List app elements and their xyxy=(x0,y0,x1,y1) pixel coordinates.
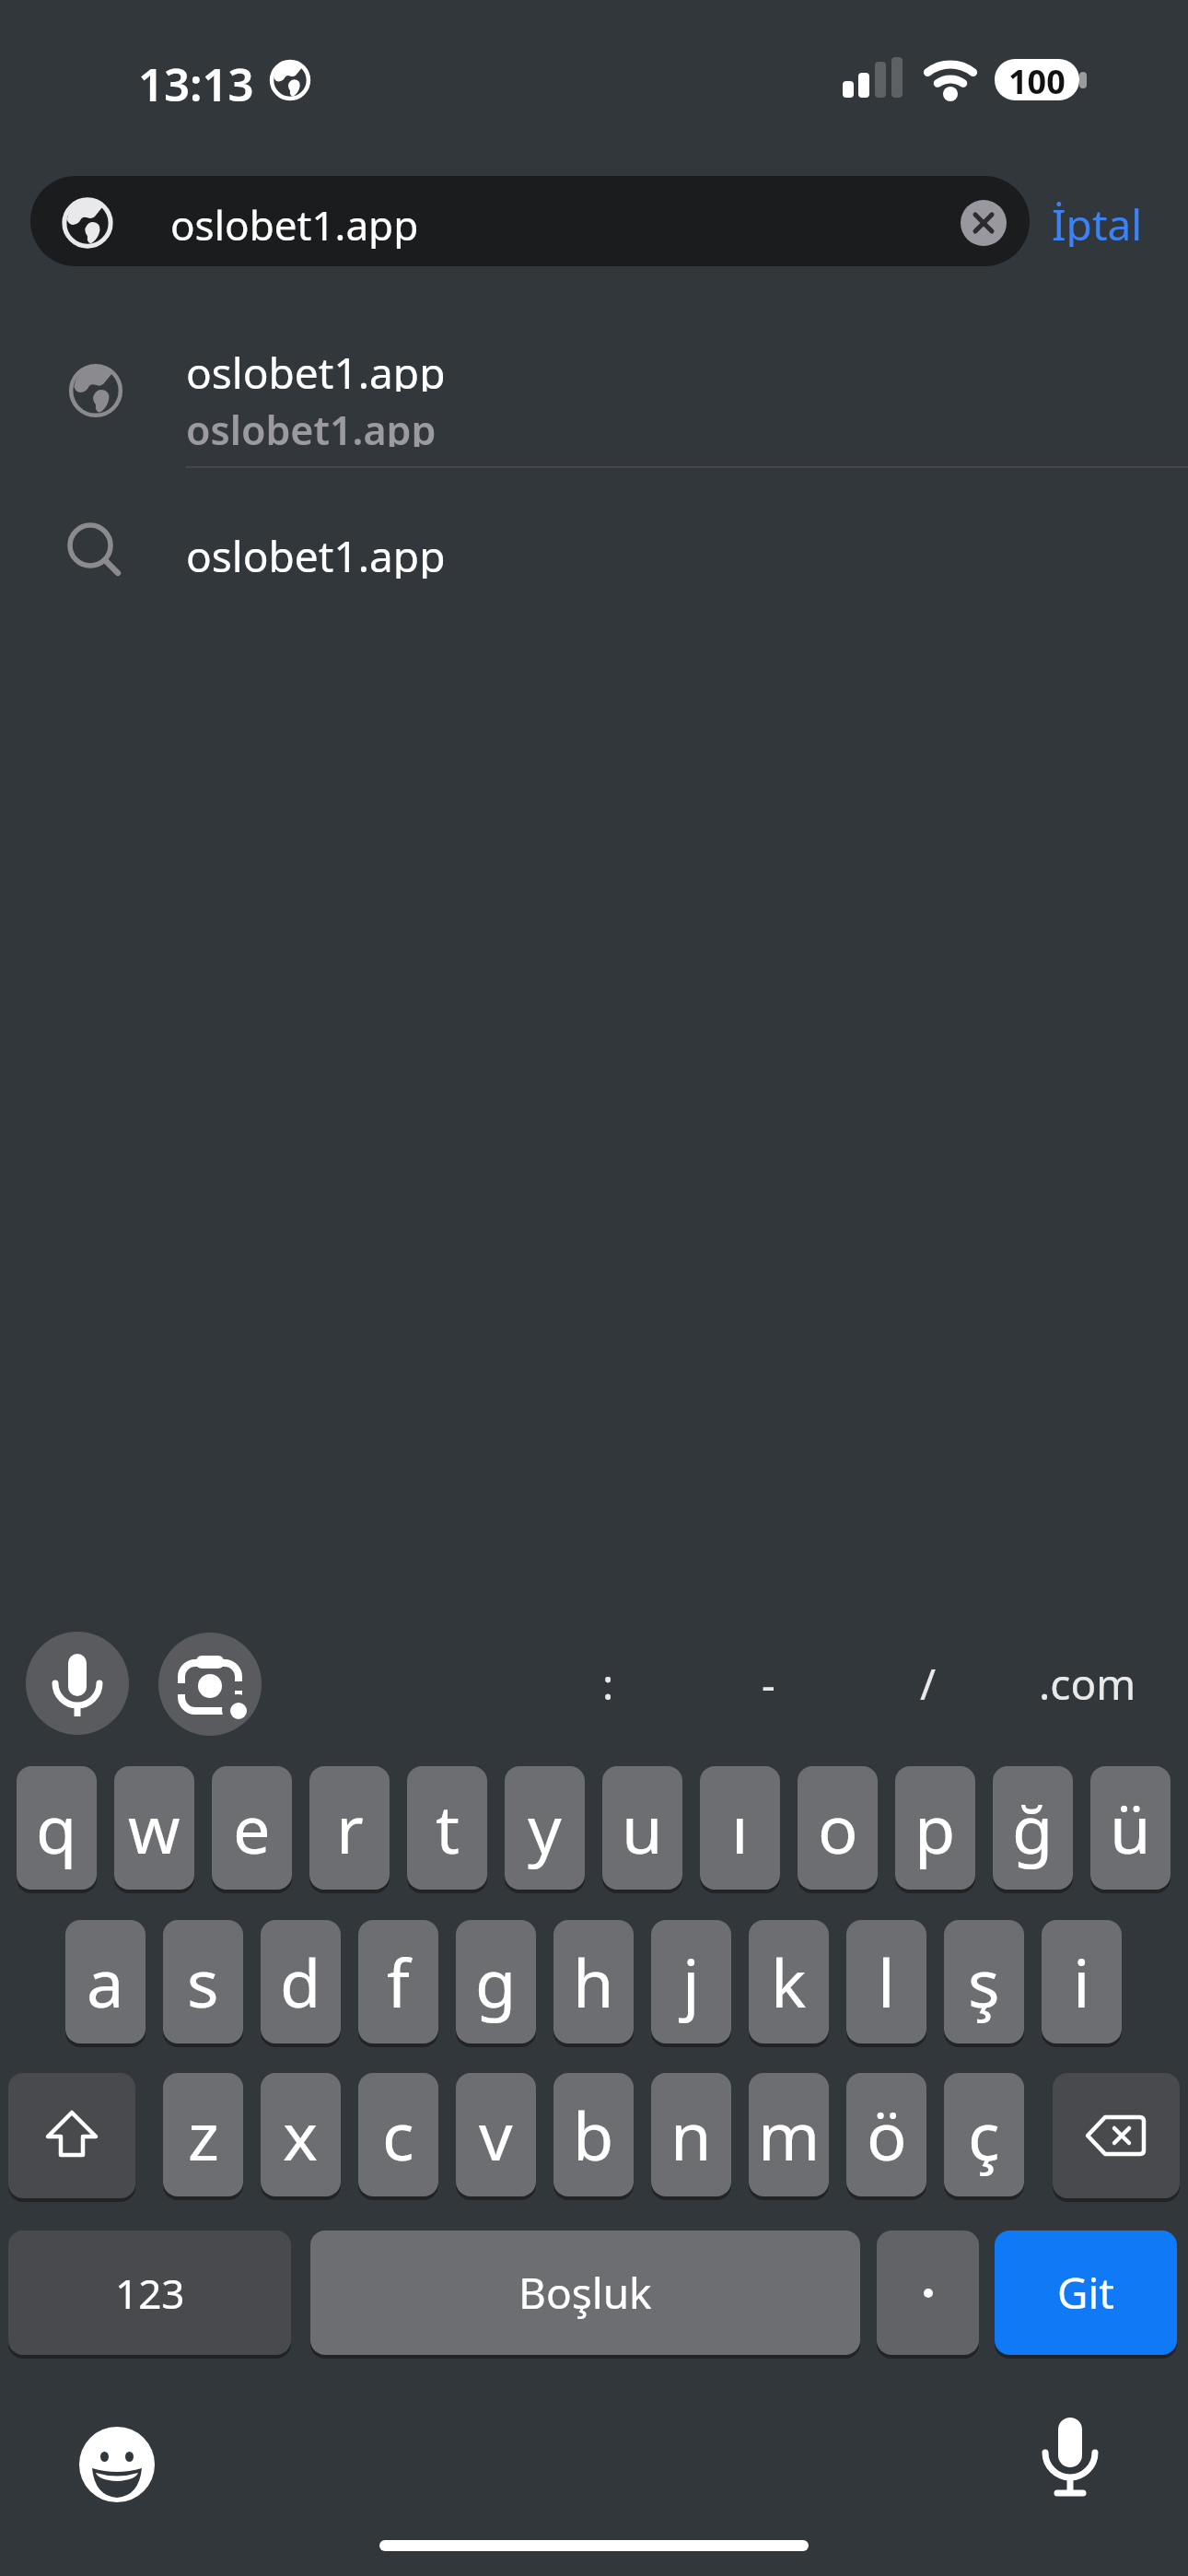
staticText: w xyxy=(128,1783,181,1873)
button[interactable]: j xyxy=(651,1920,731,2043)
staticText: g xyxy=(475,1937,517,2027)
button[interactable]: c xyxy=(358,2073,438,2196)
staticText: ç xyxy=(968,2090,1000,2180)
button[interactable] xyxy=(877,2231,979,2355)
staticText: r xyxy=(336,1783,364,1873)
staticText: 123 xyxy=(115,2266,185,2321)
button[interactable] xyxy=(26,1632,129,1735)
button[interactable]: ü xyxy=(1090,1766,1171,1890)
staticText: .com xyxy=(1039,1655,1136,1713)
button[interactable]: z xyxy=(163,2073,243,2196)
staticText: Git xyxy=(1057,2264,1114,2322)
staticText: ğ xyxy=(1012,1783,1054,1873)
staticText: f xyxy=(387,1937,410,2027)
button[interactable] xyxy=(0,479,1188,617)
button[interactable]: - xyxy=(731,1648,805,1718)
staticText: s xyxy=(187,1937,219,2027)
button[interactable] xyxy=(8,2073,135,2198)
staticText: ö xyxy=(867,2090,907,2180)
button[interactable]: w xyxy=(114,1766,194,1890)
button[interactable]: ç xyxy=(944,2073,1024,2196)
button[interactable]: b xyxy=(553,2073,634,2196)
button[interactable]: g xyxy=(456,1920,536,2043)
staticText: oslobet1.app xyxy=(186,403,437,447)
staticText: a xyxy=(87,1937,124,2027)
staticText: b xyxy=(573,2090,614,2180)
button[interactable]: d xyxy=(261,1920,341,2043)
button[interactable] xyxy=(1033,2414,1107,2506)
button[interactable]: ş xyxy=(944,1920,1024,2043)
button[interactable]: Git xyxy=(995,2231,1177,2355)
button[interactable]: p xyxy=(895,1766,975,1890)
button[interactable]: k xyxy=(749,1920,829,2043)
staticText: n xyxy=(670,2090,712,2180)
staticText: Boşluk xyxy=(518,2264,652,2322)
staticText: t xyxy=(436,1783,460,1873)
staticText: oslobet1.app xyxy=(170,197,419,249)
button[interactable]: İptal xyxy=(1046,195,1147,247)
button[interactable]: v xyxy=(456,2073,536,2196)
staticText: y xyxy=(528,1783,562,1873)
staticText: q xyxy=(36,1783,77,1873)
staticText: v xyxy=(479,2090,513,2180)
button[interactable] xyxy=(79,2427,155,2502)
button[interactable]: ö xyxy=(846,2073,926,2196)
staticText: - xyxy=(762,1655,775,1713)
staticText: z xyxy=(188,2090,219,2180)
staticText: : xyxy=(602,1655,614,1713)
button[interactable]: u xyxy=(602,1766,682,1890)
button[interactable] xyxy=(0,327,1188,465)
button[interactable]: e xyxy=(212,1766,292,1890)
staticText: x xyxy=(283,2090,319,2180)
button[interactable]: o xyxy=(798,1766,878,1890)
button[interactable]: s xyxy=(163,1920,243,2043)
staticText: oslobet1.app xyxy=(186,527,446,579)
button[interactable]: q xyxy=(17,1766,97,1890)
button[interactable]: i xyxy=(1042,1920,1122,2043)
staticText: d xyxy=(280,1937,321,2027)
button[interactable]: Boşluk xyxy=(310,2231,860,2355)
button[interactable]: ğ xyxy=(993,1766,1073,1890)
button[interactable]: ı xyxy=(700,1766,780,1890)
staticText: c xyxy=(382,2090,414,2180)
button[interactable]: .com xyxy=(1009,1648,1166,1718)
button[interactable]: : xyxy=(571,1648,645,1718)
staticText: l xyxy=(878,1937,895,2027)
button[interactable]: m xyxy=(749,2073,829,2196)
button[interactable]: y xyxy=(505,1766,585,1890)
staticText: / xyxy=(920,1655,937,1713)
staticText: İptal xyxy=(1052,195,1143,247)
staticText: j xyxy=(682,1937,700,2027)
staticText: ı xyxy=(731,1783,749,1873)
button[interactable] xyxy=(158,1633,262,1736)
button[interactable]: a xyxy=(65,1920,146,2043)
staticText: u xyxy=(622,1783,663,1873)
staticText: ü xyxy=(1110,1783,1151,1873)
staticText: 100 xyxy=(1008,59,1066,100)
staticText: h xyxy=(573,1937,614,2027)
staticText: 13:13 xyxy=(138,53,254,109)
button[interactable]: t xyxy=(407,1766,487,1890)
staticText: p xyxy=(914,1783,956,1873)
button[interactable]: n xyxy=(651,2073,731,2196)
button[interactable]: l xyxy=(846,1920,926,2043)
staticText: o xyxy=(818,1783,858,1873)
button[interactable]: / xyxy=(891,1648,965,1718)
button[interactable] xyxy=(961,200,1007,246)
staticText: i xyxy=(1073,1937,1090,2027)
staticText: k xyxy=(771,1937,807,2027)
button[interactable] xyxy=(1053,2073,1180,2198)
button[interactable]: h xyxy=(553,1920,634,2043)
staticText: m xyxy=(758,2090,821,2180)
button[interactable]: r xyxy=(309,1766,390,1890)
staticText: e xyxy=(233,1783,271,1873)
staticText: oslobet1.app xyxy=(186,344,446,392)
button[interactable]: 123 xyxy=(8,2231,291,2355)
staticText: ş xyxy=(968,1937,1000,2027)
button[interactable]: f xyxy=(358,1920,438,2043)
button[interactable]: x xyxy=(261,2073,341,2196)
button[interactable] xyxy=(30,176,1030,266)
